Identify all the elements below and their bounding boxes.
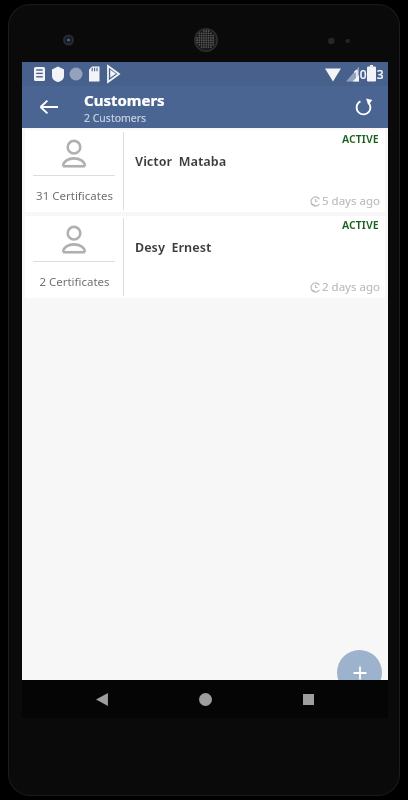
staticText: Desy Ernest	[135, 239, 212, 256]
staticText: 2 Certificates	[39, 274, 110, 290]
button[interactable]: Recents	[285, 680, 331, 718]
staticText: ACTIVE	[342, 132, 379, 146]
button[interactable]: Add customer	[337, 650, 382, 695]
staticText: 2 Customers	[84, 111, 147, 125]
staticText: Victor Mataba	[135, 153, 227, 170]
button[interactable]: 2 Certificates	[25, 216, 385, 298]
button[interactable]: Back	[79, 680, 125, 718]
button[interactable]: Refresh	[346, 90, 380, 124]
staticText: 2 days ago	[322, 279, 380, 295]
button[interactable]: Back	[32, 90, 66, 124]
staticText: Customers	[84, 90, 165, 110]
staticText: 31 Certificates	[36, 188, 113, 204]
button[interactable]: Home	[182, 680, 228, 718]
staticText: 5 days ago	[322, 193, 380, 209]
button[interactable]: 31 Certificates	[25, 130, 385, 212]
staticText: ACTIVE	[342, 218, 379, 232]
staticText: 10:13	[353, 66, 384, 82]
